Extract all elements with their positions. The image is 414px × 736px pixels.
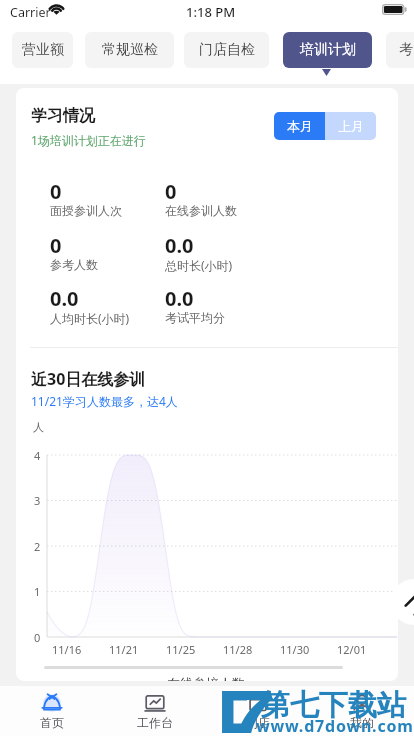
button[interactable]: 本月 xyxy=(274,112,325,140)
staticText: 门店自检 xyxy=(199,41,255,59)
button[interactable]: 我的 xyxy=(310,686,414,736)
staticText: 近30日在线参训 xyxy=(31,368,146,390)
staticText: 1:18 PM xyxy=(186,3,236,21)
staticText: 我的 xyxy=(350,715,374,730)
staticText: 总时长(小时) xyxy=(165,257,233,273)
staticText: 11/16 xyxy=(52,642,82,657)
staticText: 11/21 xyxy=(109,642,139,657)
staticText: 11/25 xyxy=(166,642,196,657)
staticText: 0 xyxy=(50,232,62,259)
staticText: 参考人数 xyxy=(50,257,98,272)
button[interactable]: Quick tools xyxy=(391,579,414,625)
staticText: 考 xyxy=(399,41,413,59)
button[interactable]: 工作台 xyxy=(103,686,206,736)
button[interactable]: 培训计划 xyxy=(283,32,372,68)
staticText: 11/30 xyxy=(280,642,310,657)
staticText: 本月 xyxy=(287,118,313,134)
button[interactable]: 上月 xyxy=(325,112,376,140)
button[interactable]: 首页 xyxy=(0,686,103,736)
staticText: 人 xyxy=(33,420,44,434)
staticText: 上月 xyxy=(338,118,364,134)
staticText: www.d7down.com xyxy=(256,715,414,736)
staticText: 培训计划 xyxy=(300,41,356,59)
staticText: 3 xyxy=(34,493,41,508)
staticText: 常规巡检 xyxy=(102,41,158,59)
staticText: 0.0 xyxy=(165,232,194,259)
staticText: 1场培训计划正在进行 xyxy=(31,132,146,148)
staticText: 在线参培人数 xyxy=(167,675,245,681)
staticText: 11/21学习人数最多，达4人 xyxy=(31,393,178,409)
staticText: 0.0 xyxy=(50,285,79,312)
staticText: 0 xyxy=(50,178,62,205)
staticText: 第七下载站 xyxy=(261,687,406,724)
staticText: 0.0 xyxy=(165,285,194,312)
staticText: Carrier xyxy=(10,4,51,21)
staticText: 0 xyxy=(34,630,41,645)
staticText: 11/28 xyxy=(223,642,253,657)
staticText: 在线参训人数 xyxy=(165,203,237,218)
button[interactable]: 常规巡检 xyxy=(85,32,174,68)
button[interactable]: 门店自检 xyxy=(184,32,269,68)
staticText: 2 xyxy=(34,539,41,554)
staticText: 门店 xyxy=(246,715,270,730)
button[interactable]: 考 xyxy=(386,32,414,68)
staticText: 考试平均分 xyxy=(165,310,225,325)
staticText: 面授参训人次 xyxy=(50,203,122,218)
staticText: 首页 xyxy=(40,715,64,730)
staticText: 1 xyxy=(34,584,41,599)
staticText: 工作台 xyxy=(137,715,173,730)
staticText: 0 xyxy=(165,178,177,205)
staticText: 学习情况 xyxy=(31,106,95,126)
button[interactable]: 门店 xyxy=(206,686,310,736)
staticText: 营业额 xyxy=(22,41,64,59)
staticText: 12/01 xyxy=(337,642,367,657)
button[interactable]: 营业额 xyxy=(12,32,73,68)
staticText: 4 xyxy=(34,448,41,463)
staticText: 人均时长(小时) xyxy=(50,310,130,326)
